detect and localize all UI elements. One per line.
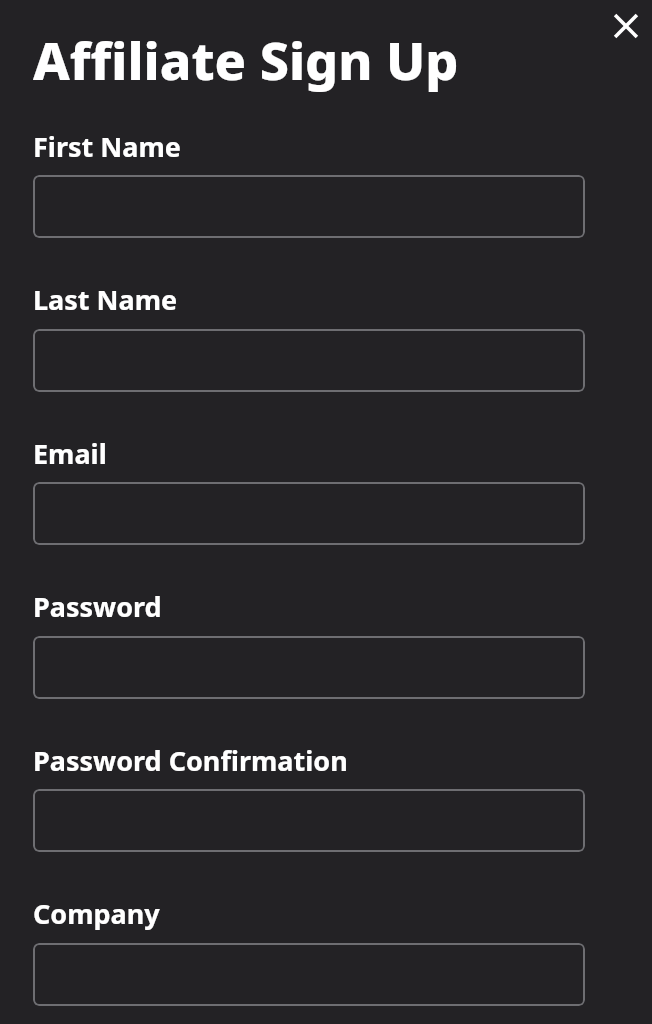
- button[interactable]: Password: [33, 636, 585, 699]
- staticText: Company: [33, 895, 160, 932]
- button[interactable]: Password Confirmation: [33, 789, 585, 852]
- staticText: Affiliate Sign Up: [33, 24, 459, 95]
- button[interactable]: Email: [33, 482, 585, 545]
- button[interactable]: Last Name: [33, 329, 585, 392]
- staticText: Email: [33, 435, 107, 472]
- staticText: First Name: [33, 128, 181, 165]
- staticText: Last Name: [33, 281, 178, 318]
- staticText: Password Confirmation: [33, 742, 348, 779]
- staticText: Password: [33, 588, 162, 625]
- button[interactable]: Close: [602, 2, 650, 50]
- button[interactable]: First Name: [33, 175, 585, 238]
- button[interactable]: Company: [33, 943, 585, 1006]
